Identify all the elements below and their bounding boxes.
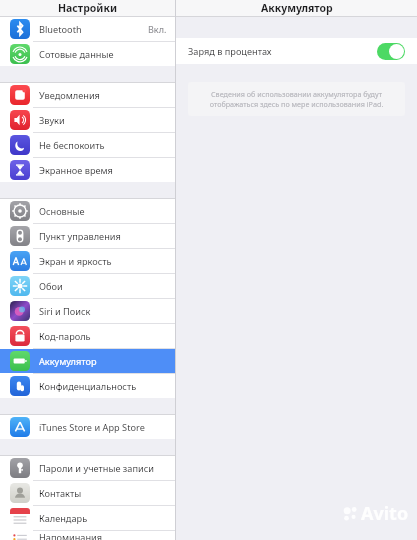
staticText: Основные [39, 205, 85, 218]
button[interactable]: Не беспокоить [0, 133, 175, 157]
staticText: Настройки [58, 1, 117, 15]
button[interactable]: Bluetooth [0, 17, 175, 41]
button[interactable]: Заряд в процентах [377, 43, 405, 60]
button[interactable]: Siri и Поиск [0, 299, 175, 323]
staticText: Avito [361, 501, 409, 526]
button[interactable]: Сотовые данные [0, 42, 175, 66]
staticText: Конфиденциальность [39, 380, 137, 393]
button[interactable]: Контакты [0, 481, 175, 505]
staticText: Экран и яркость [39, 255, 112, 268]
button[interactable]: Экранное время [0, 158, 175, 182]
button[interactable]: Заряд в процентах [176, 38, 417, 64]
staticText: Сотовые данные [39, 48, 114, 61]
staticText: Экранное время [39, 164, 113, 177]
staticText: Заряд в процентах [188, 45, 272, 58]
staticText: Вкл. [148, 23, 167, 35]
button[interactable]: iTunes Store и App Store [0, 415, 175, 439]
button[interactable]: Пункт управления [0, 224, 175, 248]
button[interactable]: Аккумулятор [0, 349, 175, 373]
staticText: Звуки [39, 114, 65, 127]
staticText: Сведения об использовании аккумулятора б… [202, 89, 391, 109]
staticText: Обои [39, 280, 63, 293]
button[interactable]: Код-пароль [0, 324, 175, 348]
staticText: Пункт управления [39, 230, 121, 243]
staticText: Напоминания [39, 531, 103, 540]
staticText: Контакты [39, 487, 82, 500]
staticText: iTunes Store и App Store [39, 421, 145, 434]
button[interactable]: Экран и яркость [0, 249, 175, 273]
button[interactable]: Уведомления [0, 83, 175, 107]
staticText: Siri и Поиск [39, 305, 91, 318]
button[interactable]: Напоминания [0, 531, 175, 540]
button[interactable]: Звуки [0, 108, 175, 132]
staticText: Bluetooth [39, 23, 82, 36]
staticText: Уведомления [39, 89, 100, 102]
staticText: Пароли и учетные записи [39, 462, 154, 475]
staticText: Аккумулятор [261, 1, 333, 15]
staticText: Календарь [39, 512, 88, 525]
button[interactable]: Конфиденциальность [0, 374, 175, 398]
staticText: Не беспокоить [39, 139, 105, 152]
button[interactable]: Календарь [0, 506, 175, 530]
button[interactable]: Обои [0, 274, 175, 298]
button[interactable]: Пароли и учетные записи [0, 456, 175, 480]
staticText: Аккумулятор [39, 355, 97, 368]
button[interactable]: Основные [0, 199, 175, 223]
staticText: Код-пароль [39, 330, 91, 343]
